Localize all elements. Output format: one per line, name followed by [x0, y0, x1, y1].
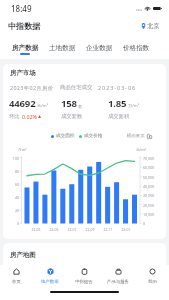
staticText: 我的 [148, 279, 157, 285]
staticText: 10,000 [143, 212, 155, 217]
staticText: 80 [6, 169, 19, 174]
staticText: 土地数据 [49, 44, 76, 52]
staticText: 100 [6, 156, 19, 161]
staticText: 房产数据 [12, 44, 39, 52]
button[interactable]: 企业数据 [81, 35, 118, 59]
staticText: 产品与服务 [107, 279, 129, 285]
staticText: 22-11 [100, 227, 116, 232]
staticText: 成交面积 [56, 133, 75, 139]
staticText: 40,000 [143, 184, 155, 189]
button[interactable]: 选择城市 北京 [141, 22, 160, 30]
button[interactable]: 产品与服务 [101, 265, 135, 289]
staticText: 18:49 [11, 3, 32, 14]
staticText: 房产地图 [10, 251, 36, 259]
button[interactable]: 房产数据 [6, 35, 44, 59]
staticText: 成交价格 [84, 133, 103, 139]
staticText: 房产市场 [10, 69, 36, 77]
staticText: 套 [78, 104, 83, 109]
staticText: 企业数据 [86, 44, 113, 52]
staticText: 元/m² [136, 147, 147, 152]
staticText: 首页 [12, 279, 21, 285]
button[interactable]: 横向展示 [127, 133, 152, 139]
staticText: 40 [6, 195, 19, 200]
button[interactable]: 首页 [0, 265, 33, 289]
button[interactable]: 地产数据 [33, 265, 67, 289]
staticText: 价格指数 [123, 44, 150, 52]
staticText: 20 [6, 208, 19, 213]
staticText: 22-09 [82, 227, 98, 232]
staticText: 2023年02月房价 [10, 84, 54, 91]
staticText: 22-03 [28, 227, 44, 232]
staticText: 0 [6, 221, 19, 226]
button[interactable]: 价格指数 [118, 35, 155, 59]
staticText: 0.02% [22, 113, 37, 120]
staticText: 60,000 [143, 165, 155, 170]
staticText: 中指报告 [75, 279, 93, 285]
staticText: 1.85 [108, 97, 127, 110]
staticText: 22-07 [64, 227, 80, 232]
staticText: 环比 [9, 113, 20, 120]
staticText: 158 [61, 97, 77, 110]
button[interactable]: 我的 [135, 265, 169, 289]
staticText: 20,000 [143, 203, 155, 208]
staticText: 22-05 [46, 227, 62, 232]
staticText: 中指数据 [8, 21, 41, 31]
staticText: 60 [6, 182, 19, 187]
staticText: 横向展示 [127, 133, 145, 139]
staticText: 万/m² [128, 103, 140, 109]
staticText: 万m² [18, 147, 27, 152]
staticText: 地产数据 [41, 279, 59, 285]
staticText: 23-01 [118, 227, 134, 232]
staticText: 元/m² [37, 103, 49, 109]
staticText: 70,000 [143, 156, 155, 161]
staticText: 2023-03-06 [98, 84, 137, 91]
staticText: 50,000 [143, 175, 155, 180]
staticText: 北京 [147, 22, 160, 30]
staticText: 44692 [9, 97, 36, 110]
staticText: 成交套数 [61, 113, 83, 120]
button[interactable]: 土地数据 [44, 35, 81, 59]
staticText: 商品住宅成交 [60, 84, 93, 91]
staticText: 30,000 [143, 193, 155, 198]
button[interactable]: 中指报告 [67, 265, 101, 289]
staticText: 成交面积 [108, 113, 130, 120]
staticText: 0 [143, 221, 146, 226]
